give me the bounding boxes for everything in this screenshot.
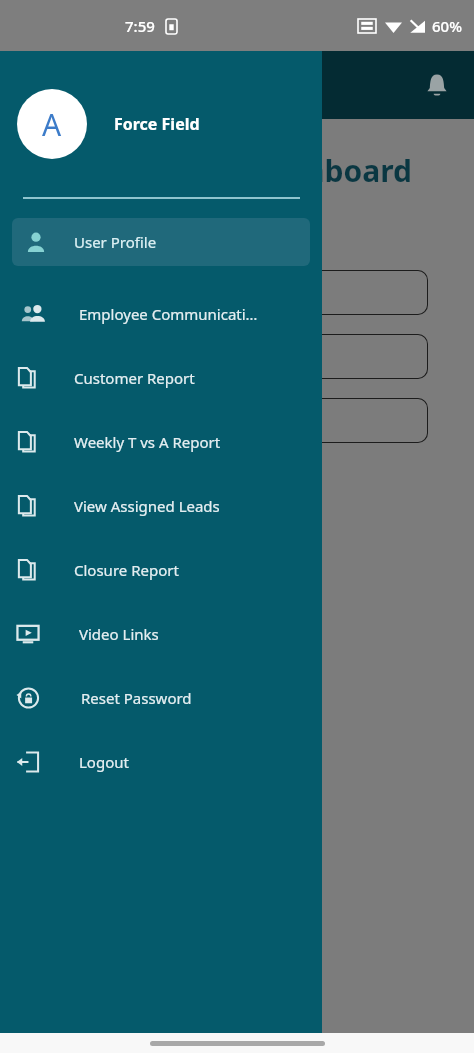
staticText: Force Field	[114, 113, 200, 135]
staticText: 60%	[432, 16, 462, 36]
staticText: A	[42, 104, 62, 145]
staticText: 7:59	[125, 16, 155, 36]
button[interactable]: Notifications	[416, 64, 458, 106]
staticText: Logout	[79, 752, 129, 772]
button[interactable]	[200, 398, 428, 443]
button[interactable]: Video Links	[0, 602, 322, 666]
staticText: Reset Password	[81, 688, 192, 708]
button[interactable]: Reset Password	[0, 666, 322, 730]
staticText: Dashboard	[250, 150, 412, 191]
staticText: Weekly T vs A Report	[74, 432, 221, 452]
button[interactable]: Customer Report	[0, 346, 322, 410]
button[interactable]: Logout	[0, 730, 322, 794]
staticText: Closure Report	[74, 560, 179, 580]
staticText: Video Links	[79, 624, 159, 644]
button[interactable]: Weekly T vs A Report	[0, 410, 322, 474]
staticText: View Assigned Leads	[74, 496, 220, 516]
button[interactable]	[200, 334, 428, 379]
staticText: User Profile	[74, 232, 157, 252]
button[interactable]: User Profile	[12, 218, 310, 266]
staticText: Employee Communicati…	[79, 304, 258, 324]
button[interactable]: View Assigned Leads	[0, 474, 322, 538]
staticText: Customer Report	[74, 368, 195, 388]
button[interactable]	[200, 270, 428, 315]
button[interactable]: Employee Communicati…	[0, 282, 322, 346]
button[interactable]: Closure Report	[0, 538, 322, 602]
